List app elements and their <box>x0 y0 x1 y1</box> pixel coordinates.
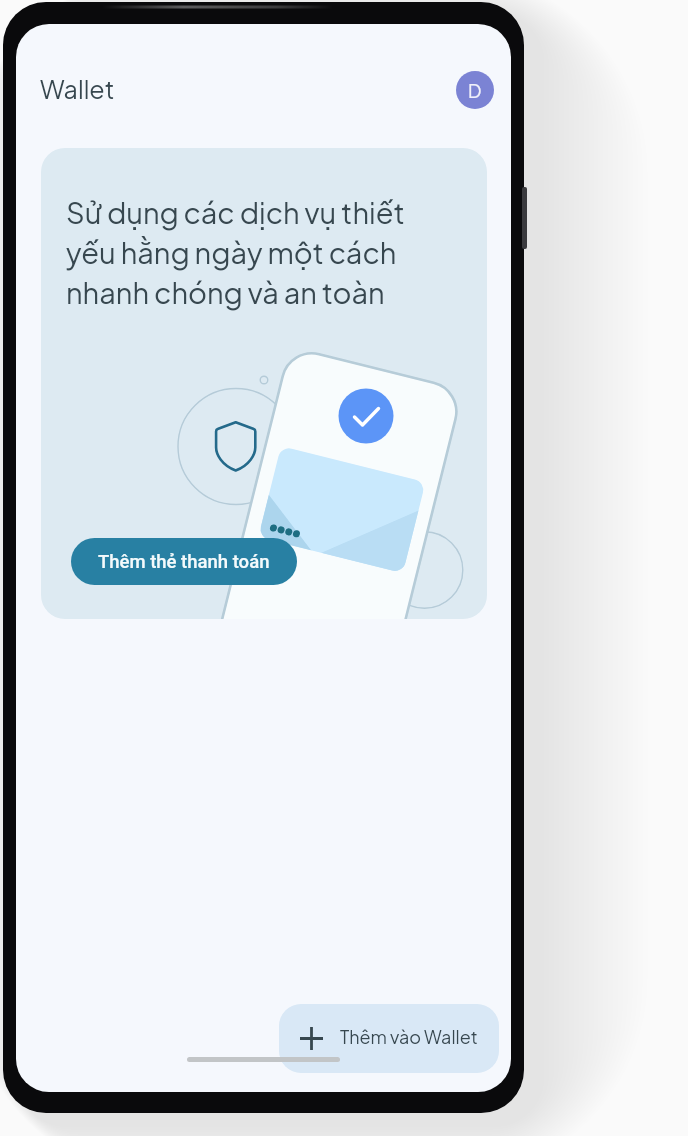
staticText: Sử dụng các dịch vụ thiết yếu hằng ngày … <box>66 194 405 310</box>
staticText: Thêm thẻ thanh toán <box>98 551 270 573</box>
staticText: Wallet <box>40 73 115 104</box>
button[interactable]: Account <box>456 71 494 109</box>
button[interactable]: Thêm vào Wallet <box>279 1004 499 1073</box>
staticText: D <box>468 79 482 102</box>
button[interactable]: Thêm thẻ thanh toán <box>71 538 297 585</box>
staticText: Thêm vào Wallet <box>340 1025 478 1048</box>
